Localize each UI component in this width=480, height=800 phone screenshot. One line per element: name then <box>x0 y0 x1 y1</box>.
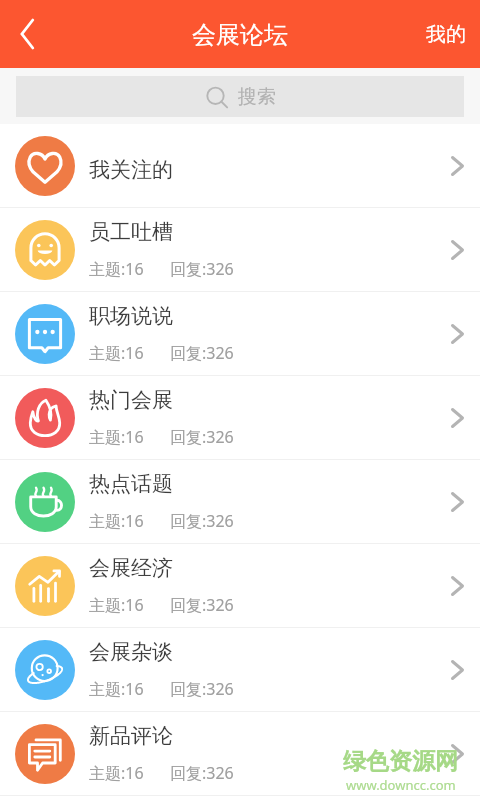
staticText: 热点话题 <box>89 471 173 497</box>
button[interactable]: 新品评论 <box>0 712 480 795</box>
button[interactable]: 热点话题 <box>0 460 480 543</box>
button[interactable]: 搜索 <box>16 76 464 117</box>
staticText: 回复:326 <box>170 426 234 448</box>
button[interactable]: 会展杂谈 <box>0 628 480 711</box>
staticText: 员工吐槽 <box>89 219 173 245</box>
staticText: 主题:16 <box>89 426 144 448</box>
button[interactable]: 我的 <box>426 0 466 68</box>
staticText: 职场说说 <box>89 303 173 329</box>
button[interactable]: 职场说说 <box>0 292 480 375</box>
staticText: 我的 <box>426 22 466 47</box>
staticText: 主题:16 <box>89 342 144 364</box>
button[interactable]: Back <box>0 0 56 68</box>
staticText: 搜索 <box>238 85 276 109</box>
staticText: 回复:326 <box>170 678 234 700</box>
staticText: 主题:16 <box>89 510 144 532</box>
button[interactable]: 我关注的 <box>0 124 480 207</box>
button[interactable]: 会展经济 <box>0 544 480 627</box>
staticText: 回复:326 <box>170 342 234 364</box>
staticText: 热门会展 <box>89 387 173 413</box>
staticText: www.downcc.com <box>346 776 456 794</box>
staticText: 主题:16 <box>89 678 144 700</box>
staticText: 会展杂谈 <box>89 639 173 665</box>
staticText: 回复:326 <box>170 258 234 280</box>
staticText: 我关注的 <box>89 157 173 183</box>
staticText: 主题:16 <box>89 594 144 616</box>
staticText: 新品评论 <box>89 723 173 749</box>
staticText: 回复:326 <box>170 762 234 784</box>
staticText: 主题:16 <box>89 762 144 784</box>
staticText: 主题:16 <box>89 258 144 280</box>
staticText: 会展经济 <box>89 555 173 581</box>
staticText: 回复:326 <box>170 510 234 532</box>
button[interactable]: 员工吐槽 <box>0 208 480 291</box>
staticText: 绿色资源网 <box>343 747 458 776</box>
staticText: 回复:326 <box>170 594 234 616</box>
button[interactable]: 热门会展 <box>0 376 480 459</box>
staticText: 会展论坛 <box>192 20 288 50</box>
